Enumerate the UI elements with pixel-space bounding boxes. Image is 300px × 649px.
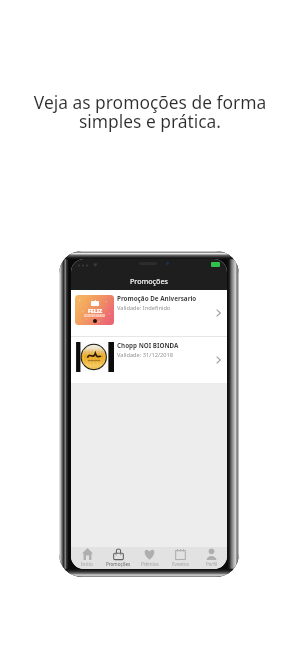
button[interactable]: Promoções: [103, 547, 134, 569]
staticText: Promoções: [106, 561, 131, 567]
button[interactable]: Perfil: [196, 547, 227, 569]
staticText: Promoções: [130, 276, 168, 286]
staticText: Prêmios: [141, 561, 159, 567]
button[interactable]: FELIZ: [71, 290, 227, 336]
staticText: ANIVERSARIO: [84, 314, 106, 318]
staticText: Eventos: [172, 561, 189, 567]
staticText: Promoção De Aniversario: [117, 294, 197, 303]
button[interactable]: Prêmios: [134, 547, 165, 569]
staticText: Validade: Indefinido: [117, 304, 171, 312]
button[interactable]: Chopp NOI BIONDA: [71, 337, 227, 383]
button[interactable]: Eventos: [165, 547, 196, 569]
staticText: Perfil: [206, 561, 218, 567]
button[interactable]: Início: [71, 547, 103, 569]
staticText: Validade: 31/12/2018: [117, 351, 174, 359]
staticText: FELIZ: [88, 307, 103, 314]
staticText: Veja as promoções de forma simples e prá…: [0, 90, 300, 133]
staticText: Chopp NOI BIONDA: [117, 341, 179, 350]
staticText: Início: [81, 561, 93, 567]
